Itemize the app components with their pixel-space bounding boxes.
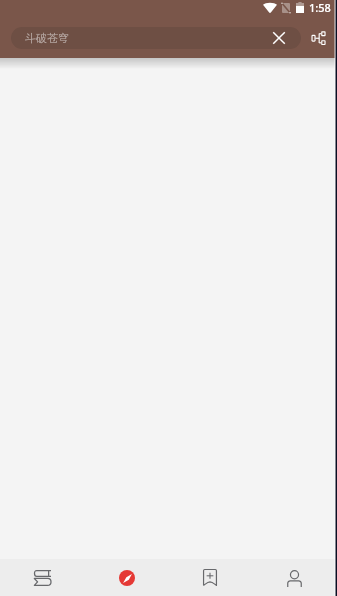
button[interactable]: Profile <box>253 559 337 596</box>
button[interactable]: 斗破苍穹 <box>11 27 301 49</box>
staticText: 1:58 <box>309 0 331 15</box>
button[interactable]: Bookmarks <box>169 559 253 596</box>
button[interactable]: Device hub <box>303 24 333 51</box>
button[interactable]: Discover <box>119 570 135 586</box>
staticText: 斗破苍穹 <box>25 31 69 45</box>
button[interactable]: Bookshelf <box>0 559 85 596</box>
button[interactable]: Clear search <box>266 25 292 51</box>
